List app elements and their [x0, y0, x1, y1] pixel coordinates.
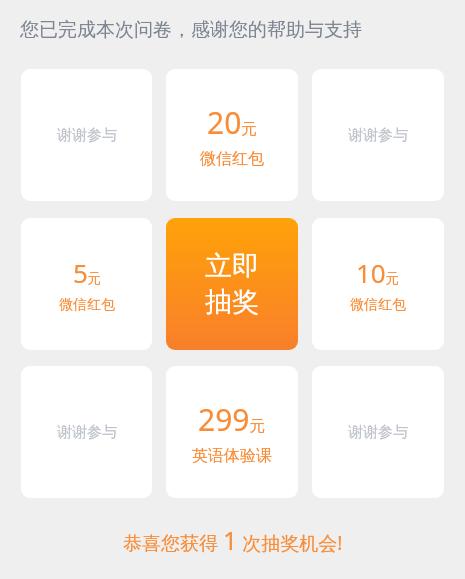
button[interactable]: 谢谢参与: [312, 366, 444, 498]
staticText: 5元: [73, 255, 102, 290]
staticText: 谢谢参与: [348, 126, 408, 145]
staticText: 谢谢参与: [348, 423, 408, 442]
button[interactable]: 立即: [166, 218, 298, 350]
staticText: 您已完成本次问卷，感谢您的帮助与支持: [20, 18, 362, 42]
staticText: 微信红包: [200, 149, 264, 169]
staticText: 20元: [207, 102, 257, 143]
staticText: 微信红包: [350, 296, 406, 314]
staticText: 299元: [198, 399, 266, 440]
staticText: 恭喜您获得 1 次抽奖机会!: [123, 523, 343, 557]
button[interactable]: 10元: [312, 218, 444, 350]
button[interactable]: 谢谢参与: [312, 69, 444, 201]
staticText: 抽奖: [205, 285, 259, 319]
staticText: 谢谢参与: [57, 126, 117, 145]
button[interactable]: 299元: [166, 366, 298, 498]
button[interactable]: 谢谢参与: [21, 366, 152, 498]
button[interactable]: 谢谢参与: [21, 69, 152, 201]
button[interactable]: 20元: [166, 69, 298, 201]
button[interactable]: 5元: [21, 218, 152, 350]
staticText: 谢谢参与: [57, 423, 117, 442]
staticText: 英语体验课: [192, 446, 272, 466]
staticText: 微信红包: [59, 296, 115, 314]
staticText: 10元: [356, 255, 400, 290]
staticText: 立即: [205, 249, 259, 283]
